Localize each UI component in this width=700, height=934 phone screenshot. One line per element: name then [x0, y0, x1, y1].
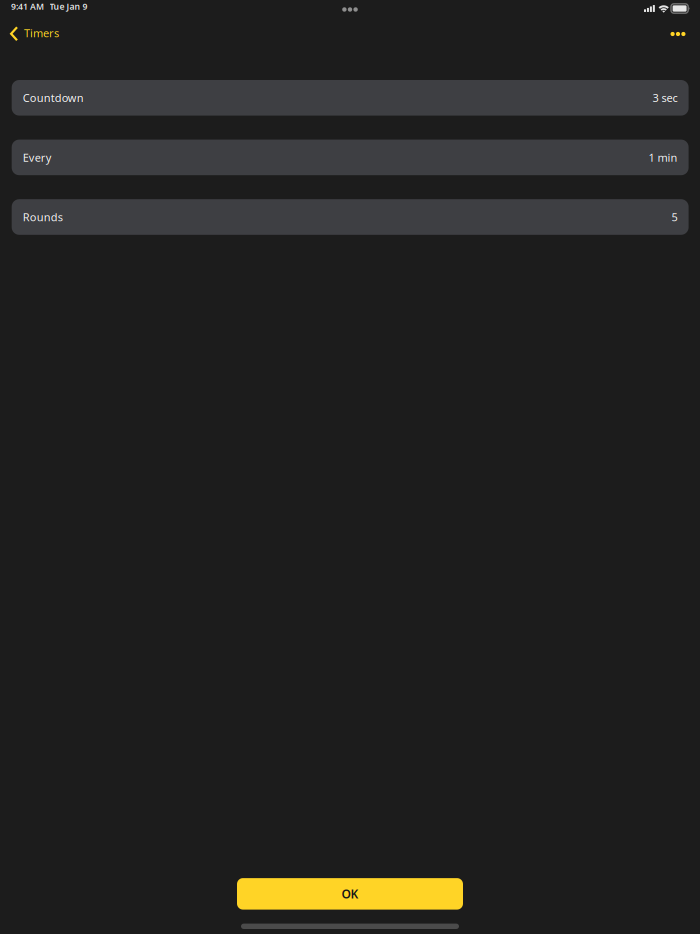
staticText: Countdown — [23, 90, 84, 105]
staticText: 5 — [672, 209, 678, 224]
button[interactable]: Rounds — [12, 199, 689, 235]
button[interactable]: Every — [12, 140, 689, 175]
staticText: 3 sec — [653, 90, 678, 105]
button[interactable]: OK — [237, 878, 463, 910]
staticText: Every — [23, 150, 52, 165]
button[interactable]: Countdown — [12, 80, 689, 116]
staticText: OK — [341, 886, 358, 902]
staticText: 1 min — [649, 150, 678, 165]
staticText: Tue Jan 9 — [49, 1, 87, 12]
staticText: Rounds — [23, 209, 63, 224]
staticText: 9:41 AM — [11, 1, 44, 12]
button[interactable]: More options — [658, 21, 700, 45]
button[interactable]: Timers — [0, 21, 69, 45]
staticText: Timers — [24, 25, 59, 40]
